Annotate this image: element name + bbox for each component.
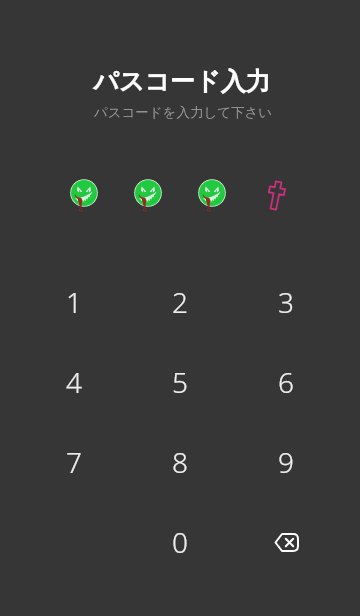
button[interactable]: 1 xyxy=(29,269,119,335)
staticText: 7 xyxy=(66,443,82,481)
button[interactable]: 8 xyxy=(135,429,225,495)
button[interactable]: 6 xyxy=(241,349,331,415)
staticText: 2 xyxy=(172,283,188,321)
staticText: 8 xyxy=(172,443,188,481)
button[interactable]: 7 xyxy=(29,429,119,495)
other: Empty slot xyxy=(264,180,288,211)
button[interactable]: 2 xyxy=(135,269,225,335)
button[interactable]: 4 xyxy=(29,349,119,415)
staticText: 4 xyxy=(66,363,82,401)
staticText: 9 xyxy=(278,443,294,481)
button[interactable]: 5 xyxy=(135,349,225,415)
button[interactable]: 3 xyxy=(241,269,331,335)
button[interactable]: Delete xyxy=(241,509,331,575)
staticText: 1 xyxy=(66,283,82,321)
button[interactable]: 9 xyxy=(241,429,331,495)
staticText: パスコードを入力して下さい xyxy=(3,104,360,121)
staticText: 6 xyxy=(278,363,294,401)
staticText: 0 xyxy=(172,523,188,561)
staticText: 5 xyxy=(172,363,188,401)
button[interactable]: 0 xyxy=(135,509,225,575)
staticText: パスコード入力 xyxy=(2,66,360,97)
staticText: 3 xyxy=(278,283,294,321)
